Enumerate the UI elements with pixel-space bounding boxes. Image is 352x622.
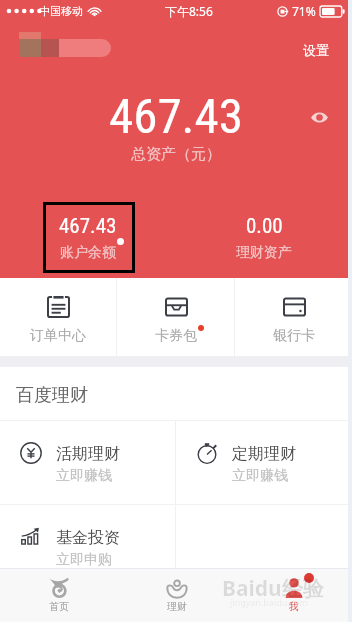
staticText: Baidu经验	[222, 574, 324, 603]
staticText: 71%	[292, 3, 316, 19]
staticText: 理财资产	[236, 244, 292, 262]
staticText: 活期理财	[56, 444, 120, 464]
staticText: 立即申购	[56, 551, 112, 569]
staticText: 467.43	[59, 214, 117, 239]
button[interactable]: 467.43	[0, 214, 176, 262]
button[interactable]: 银行卡	[235, 278, 352, 356]
staticText: 中国移动	[39, 4, 83, 18]
button[interactable]: 基金投资	[0, 505, 175, 588]
button[interactable]: 设置	[295, 34, 337, 66]
staticText: 基金投资	[56, 528, 120, 548]
staticText: 卡券包	[155, 327, 197, 345]
button[interactable]: 活期理财	[0, 421, 175, 504]
button[interactable]: 我	[235, 569, 352, 622]
staticText: 订单中心	[30, 327, 86, 345]
staticText: 立即赚钱	[56, 467, 112, 485]
button[interactable]: Toggle balance visibility	[308, 106, 330, 128]
staticText: 下午8:56	[165, 3, 213, 19]
staticText: 首页	[49, 600, 69, 613]
staticText: 467.43	[109, 88, 243, 145]
staticText: 立即赚钱	[232, 467, 288, 485]
button[interactable]: 定期理财	[176, 421, 352, 504]
button[interactable]: 0.00	[176, 214, 352, 262]
staticText: 我	[289, 600, 299, 613]
button[interactable]: 理财	[118, 569, 235, 622]
staticText: 0.00	[246, 214, 283, 239]
staticText: 账户余额	[60, 244, 116, 262]
staticText: 百度理财	[16, 384, 88, 407]
button[interactable]: 订单中心	[0, 278, 116, 356]
button[interactable]: 卡券包	[117, 278, 234, 356]
staticText: jingyan.baidu.com	[230, 596, 308, 608]
staticText: 理财	[167, 600, 187, 613]
staticText: 银行卡	[273, 327, 315, 345]
staticText: 定期理财	[232, 444, 296, 464]
staticText: 总资产（元）	[131, 145, 221, 164]
button[interactable]: 首页	[0, 569, 118, 622]
staticText: 设置	[303, 42, 329, 58]
